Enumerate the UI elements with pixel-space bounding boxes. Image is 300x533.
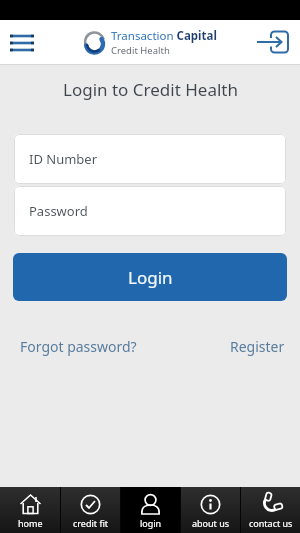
staticText: Forgot password? — [20, 337, 137, 356]
button[interactable]: ID Number — [14, 134, 286, 184]
staticText: Login to Credit Health — [63, 78, 238, 101]
staticText: credit fit — [73, 517, 109, 529]
staticText: ID Number — [29, 150, 98, 168]
button[interactable] — [256, 25, 292, 61]
button[interactable]: about us — [181, 487, 240, 533]
button[interactable]: home — [0, 487, 60, 533]
staticText: Password — [29, 202, 88, 220]
staticText: contact us — [249, 517, 293, 529]
staticText: home — [18, 517, 43, 529]
button[interactable] — [6, 27, 38, 59]
staticText: Credit Health — [111, 44, 170, 57]
staticText: Transaction Capital — [111, 28, 217, 44]
button[interactable]: Register — [230, 337, 285, 356]
staticText: Register — [230, 337, 285, 356]
button[interactable]: login — [121, 487, 180, 533]
button[interactable]: Login — [13, 253, 287, 301]
button[interactable]: credit fit — [61, 487, 120, 533]
button[interactable]: Password — [14, 186, 286, 236]
staticText: about us — [192, 517, 230, 529]
staticText: Login — [128, 266, 173, 289]
button[interactable]: Forgot password? — [20, 337, 137, 356]
staticText: login — [140, 517, 162, 529]
button[interactable]: contact us — [241, 487, 300, 533]
